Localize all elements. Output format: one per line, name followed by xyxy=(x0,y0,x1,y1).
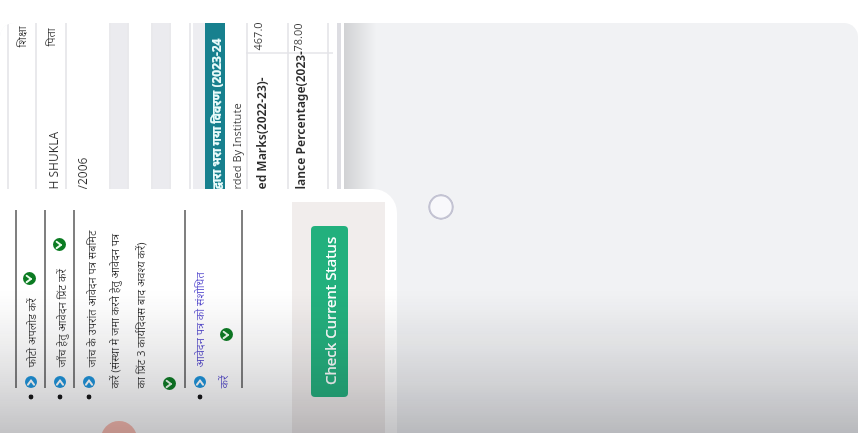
button[interactable]: Add xyxy=(101,421,137,433)
staticText: फोटो अपलोड करें xyxy=(23,297,38,367)
button[interactable]: Open link xyxy=(163,377,176,390)
button[interactable]: Expand section xyxy=(25,376,37,388)
staticText: 467.0 xyxy=(249,23,264,50)
staticText: /2006 xyxy=(73,157,89,189)
staticText: करें xyxy=(215,375,230,388)
button[interactable]: Close xyxy=(428,194,454,220)
staticText: पिता xyxy=(42,27,57,46)
staticText: द्वारा भरा गया विवरण (2023-24 xyxy=(207,38,223,189)
staticText: जाँच हेतु आवेदन प्रिंट करें xyxy=(53,268,68,367)
staticText: शिक्षा xyxy=(13,25,28,47)
staticText: Check Current Status xyxy=(319,236,339,385)
staticText: lance Percentage(2023- xyxy=(291,50,307,189)
button[interactable]: Open link xyxy=(220,328,233,341)
staticText: 78.00 xyxy=(289,23,304,51)
staticText: H SHUKLA xyxy=(44,131,60,189)
staticText: आवेदन पत्र को संशोधित xyxy=(191,271,206,367)
button[interactable]: Expand section xyxy=(194,376,206,388)
button[interactable]: Check Current Status xyxy=(311,226,348,397)
staticText: का प्रिंट 3 कार्यदिवस बाद अवश्य करें) xyxy=(132,241,147,388)
staticText: ed Marks(2022-23)- xyxy=(252,76,268,189)
button[interactable]: Open link xyxy=(53,238,66,251)
button[interactable]: Open link xyxy=(23,272,36,285)
staticText: rded By Institute xyxy=(228,102,243,189)
button[interactable]: Expand section xyxy=(83,376,95,388)
staticText: जांच के उपरांत आवेदन पत्र सबमिट xyxy=(83,230,98,367)
staticText: करें (संस्था मे जमा करने हेतु आवेदन पत्र xyxy=(106,233,121,388)
button[interactable]: Expand section xyxy=(54,376,66,388)
